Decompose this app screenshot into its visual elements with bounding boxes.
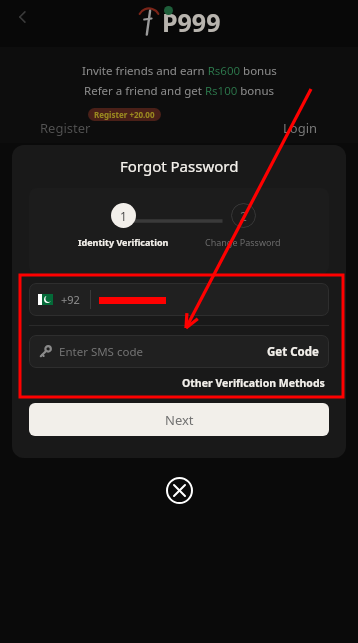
button[interactable]: Get Code xyxy=(257,338,329,366)
staticText: Next xyxy=(165,411,194,429)
staticText: Other Verification Methods xyxy=(182,376,325,390)
staticText: Identity Verification xyxy=(78,236,169,248)
staticText: Refer a friend and get Rs100 bonus xyxy=(84,83,275,99)
staticText: Login xyxy=(283,119,318,137)
staticText: Get Code xyxy=(267,344,319,360)
button[interactable]: +92 xyxy=(29,283,329,316)
staticText: +92 xyxy=(61,292,80,307)
staticText: 2 xyxy=(240,208,247,224)
staticText: Change Password xyxy=(205,236,281,248)
staticText: Forgot Password xyxy=(120,156,239,176)
staticText: Invite friends and earn Rs600 bonus xyxy=(82,63,277,79)
button[interactable]: Other Verification Methods xyxy=(178,373,329,393)
staticText: Register xyxy=(40,119,91,137)
button[interactable]: Close xyxy=(164,475,194,505)
button[interactable]: Register xyxy=(34,117,97,139)
button[interactable]: Next xyxy=(29,403,329,436)
staticText: P999 xyxy=(162,5,221,39)
button[interactable]: Login xyxy=(277,117,324,139)
staticText: Enter SMS code xyxy=(59,344,143,360)
staticText: 1 xyxy=(120,208,127,224)
staticText: Register +20.00 xyxy=(94,109,155,120)
button[interactable]: Back xyxy=(6,0,40,34)
